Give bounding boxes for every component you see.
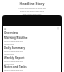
staticText: ○ [57,27,60,30]
staticText: page is all about right here [0,10,64,13]
staticText: Short supporting line [4,40,23,43]
staticText: Weekly Report [4,56,25,60]
button[interactable]: Weekly Report [4,56,60,66]
button[interactable]: Search [57,27,60,30]
staticText: second line [4,53,15,56]
staticText: Short supporting line [4,69,23,72]
staticText: Overview [4,31,19,35]
staticText: Daily Summary [4,46,26,50]
button[interactable]: Morning Routine [4,36,60,46]
staticText: Updated a moment ago [4,35,26,38]
staticText: Morning Routine [4,36,28,40]
staticText: Headline Story [0,1,64,6]
staticText: Short supporting line [4,50,23,53]
staticText: second line [4,43,15,46]
staticText: A short description of what this [0,7,64,10]
staticText: and a third short line [0,13,64,16]
staticText: second line [4,63,15,66]
button[interactable]: Notes and Tasks [4,65,60,72]
staticText: ≡ [4,27,7,30]
button[interactable]: Menu [4,27,7,30]
staticText: Notes and Tasks [4,65,27,69]
staticText: Short supporting line [4,60,23,63]
button[interactable]: Daily Summary [4,46,60,56]
